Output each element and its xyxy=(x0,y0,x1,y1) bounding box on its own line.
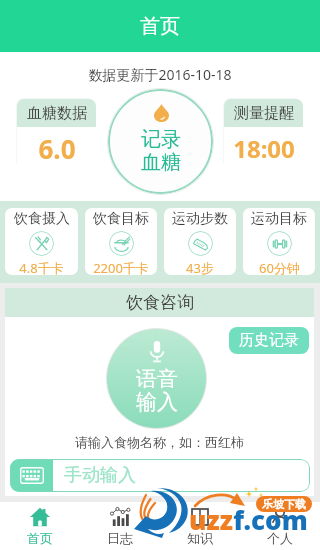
staticText: 43步 xyxy=(186,259,214,275)
staticText: 乐坡下载 xyxy=(262,497,306,511)
button[interactable]: 饮食摄入 xyxy=(5,208,78,275)
button[interactable]: 运动步数 xyxy=(164,208,236,275)
button[interactable]: 饮食目标 xyxy=(85,208,157,275)
button[interactable]: 手动输入 xyxy=(10,459,310,492)
staticText: 个人 xyxy=(267,530,293,546)
staticText: 6.0 xyxy=(38,131,76,166)
staticText: 运动目标 xyxy=(251,210,307,228)
staticText: 语音 输入 xyxy=(136,366,178,415)
button[interactable]: 语音 输入 xyxy=(107,329,206,428)
staticText: 2200千卡 xyxy=(93,259,149,275)
staticText: 饮食咨询 xyxy=(126,292,194,313)
staticText: 饮食摄入 xyxy=(14,210,70,228)
staticText: 请输入食物名称，如：西红柿 xyxy=(75,434,244,450)
staticText: 18:00 xyxy=(233,132,295,165)
button[interactable]: 个人 xyxy=(240,502,320,550)
button[interactable]: 运动目标 xyxy=(243,208,315,275)
button[interactable]: 首页 xyxy=(0,502,80,550)
staticText: 手动输入 xyxy=(64,464,136,487)
staticText: f.com xyxy=(233,502,308,537)
button[interactable]: 测量提醒 xyxy=(224,99,303,170)
staticText: 首页 xyxy=(27,530,53,546)
staticText: 知识 xyxy=(187,530,213,546)
staticText: 测量提醒 xyxy=(234,104,294,123)
staticText: 记录 血糖 xyxy=(141,127,181,175)
staticText: 历史记录 xyxy=(239,331,299,350)
staticText: 数据更新于2016-10-18 xyxy=(88,65,232,84)
staticText: 日志 xyxy=(107,530,133,546)
staticText: 4.8千卡 xyxy=(19,259,64,275)
staticText: 血糖数据 xyxy=(27,104,87,123)
button[interactable]: 日志 xyxy=(80,502,160,550)
button[interactable]: 血糖数据 xyxy=(17,99,96,170)
staticText: 首页 xyxy=(140,14,180,39)
staticText: uzz xyxy=(189,502,233,537)
staticText: 饮食目标 xyxy=(93,210,149,228)
staticText: 60分钟 xyxy=(259,259,300,275)
button[interactable]: 知识 xyxy=(160,502,240,550)
button[interactable]: 记录 血糖 xyxy=(108,89,213,194)
staticText: 运动步数 xyxy=(172,210,228,228)
button[interactable]: 历史记录 xyxy=(229,327,309,354)
